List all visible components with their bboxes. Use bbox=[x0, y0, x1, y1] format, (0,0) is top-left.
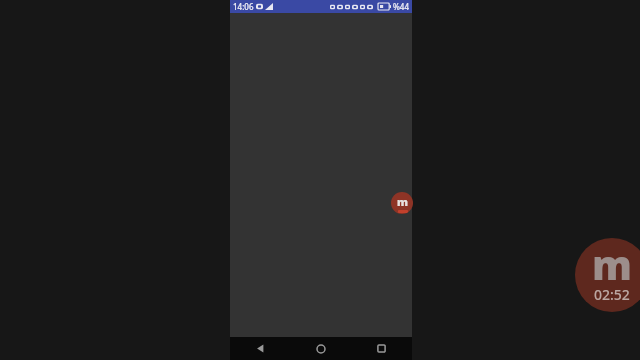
button[interactable]: Back bbox=[230, 337, 290, 360]
button[interactable]: Screen recorder controls bbox=[391, 192, 413, 214]
staticText: 14:06 bbox=[233, 1, 254, 12]
staticText: %44 bbox=[393, 1, 409, 12]
button[interactable]: Home bbox=[290, 337, 351, 360]
button[interactable]: Recent apps bbox=[351, 337, 412, 360]
staticText: 02:52 bbox=[594, 285, 630, 304]
staticText: m bbox=[592, 237, 632, 291]
staticText: m bbox=[397, 194, 408, 209]
